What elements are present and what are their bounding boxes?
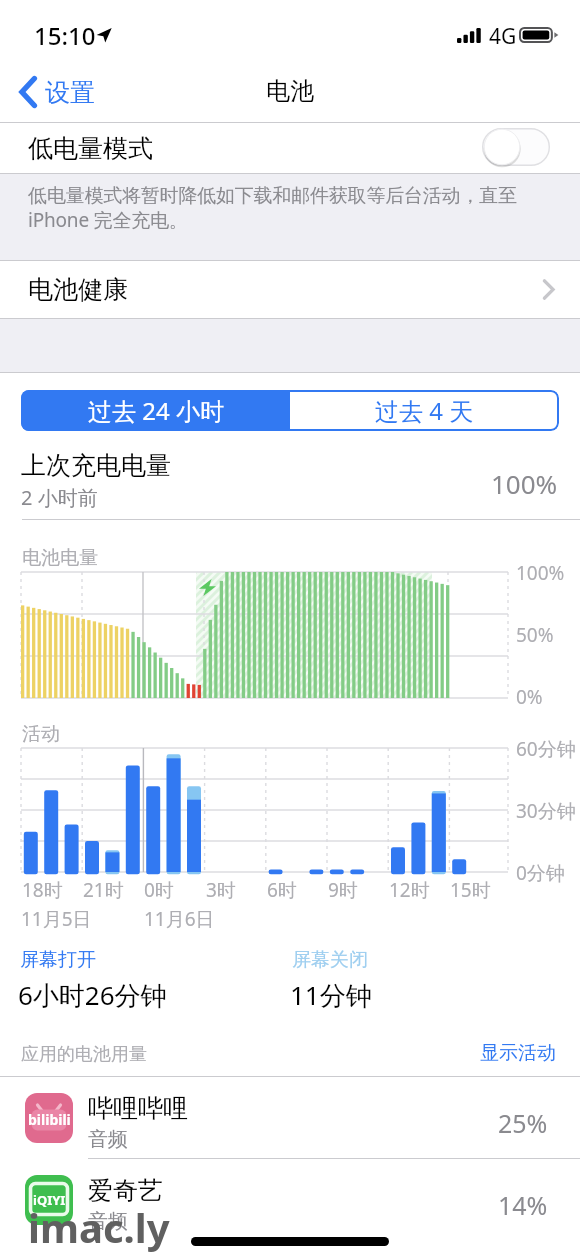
button[interactable]: 显示活动 (480, 1041, 556, 1065)
staticText: 100% (491, 466, 558, 501)
staticText: 过去 4 天 (375, 394, 474, 427)
staticText: bilibili (28, 1110, 71, 1129)
staticText: 21时 (83, 877, 124, 903)
staticText: 电池 (266, 76, 314, 106)
staticText: 50% (516, 622, 554, 648)
staticText: 25% (498, 1106, 548, 1140)
staticText: 应用的电池用量 (21, 1043, 147, 1066)
button[interactable]: 电池健康 (0, 261, 580, 318)
staticText: 低电量模式将暂时降低如下载和邮件获取等后台活动，直至 (28, 184, 517, 208)
button[interactable]: 过去 4 天 (290, 390, 559, 431)
staticText: 60分钟 (516, 736, 576, 762)
staticText: imac.ly (28, 1200, 170, 1254)
button[interactable]: 过去 24 小时 (21, 390, 290, 431)
staticText: 爱奇艺 (88, 1175, 163, 1206)
staticText: 12时 (389, 877, 430, 903)
staticText: 显示活动 (480, 1041, 556, 1065)
staticText: iPhone 完全充电。 (28, 207, 188, 233)
staticText: 11月6日 (144, 906, 215, 932)
staticText: 0% (516, 684, 543, 710)
staticText: 低电量模式 (28, 133, 153, 164)
staticText: 14% (498, 1188, 548, 1222)
staticText: 音频 (88, 1209, 128, 1234)
staticText: 电池健康 (28, 274, 128, 305)
staticText: 0分钟 (516, 860, 565, 886)
staticText: 15时 (450, 877, 491, 903)
staticText: iQIYI (33, 1191, 66, 1209)
staticText: 屏幕打开 (20, 948, 96, 972)
button[interactable]: Low Power Mode toggle (482, 128, 550, 166)
button[interactable]: 设置 (12, 62, 109, 122)
button[interactable]: iQIYI (0, 1159, 580, 1240)
staticText: 100% (516, 560, 565, 586)
staticText: 活动 (22, 722, 60, 746)
staticText: 6小时26分钟 (18, 977, 167, 1013)
button[interactable]: bilibili (0, 1077, 580, 1158)
staticText: 11月5日 (21, 906, 92, 932)
staticText: 15:10 (34, 19, 96, 52)
staticText: 电池电量 (22, 546, 98, 570)
staticText: 过去 24 小时 (88, 394, 224, 427)
staticText: 音频 (88, 1127, 128, 1152)
staticText: 屏幕关闭 (292, 948, 368, 972)
staticText: 11分钟 (290, 977, 372, 1013)
staticText: 3时 (206, 877, 236, 903)
staticText: 设置 (45, 77, 95, 108)
staticText: 30分钟 (516, 798, 576, 824)
staticText: 哔哩哔哩 (88, 1093, 188, 1124)
staticText: 9时 (328, 877, 358, 903)
staticText: 6时 (267, 877, 297, 903)
staticText: 4G (489, 22, 517, 51)
button[interactable]: 低电量模式 (0, 123, 580, 173)
staticText: 上次充电电量 (21, 450, 171, 481)
staticText: 0时 (144, 877, 174, 903)
staticText: 18时 (22, 877, 63, 903)
staticText: 2 小时前 (21, 484, 98, 511)
